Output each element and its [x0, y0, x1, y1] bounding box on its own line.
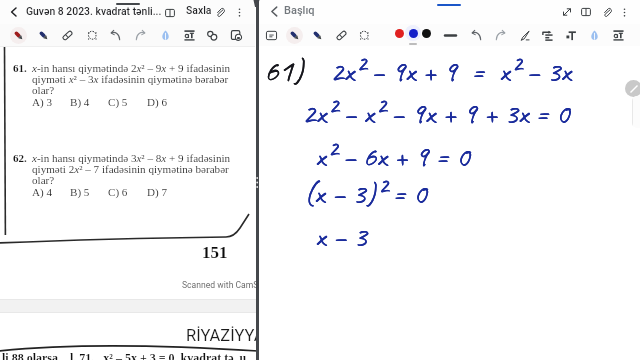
- button[interactable]: Sticker: [260, 24, 282, 46]
- button[interactable]: Text box: [607, 24, 629, 46]
- button[interactable]: Split view: [578, 4, 594, 20]
- staticText: 61): [264, 50, 304, 90]
- staticText: x² – 6x + 9 = 0: [315, 137, 470, 175]
- staticText: li 88 olarsa, l. 71. x² – 5x + 3 = 0 kva…: [2, 351, 247, 360]
- staticText: D) 6: [147, 96, 168, 108]
- staticText: 2x² – 9x + 9 = x² – 3x: [330, 52, 571, 90]
- button[interactable]: Back: [6, 4, 22, 20]
- staticText: 2x² – 9x + 9 = x² – 3x: [330, 52, 571, 90]
- staticText: olar?: [32, 84, 55, 96]
- button[interactable]: Attach: [212, 4, 228, 20]
- button[interactable]: Shapes: [201, 24, 223, 46]
- button[interactable]: Resize split: [256, 0, 259, 360]
- button[interactable]: Ink colour: [404, 24, 422, 42]
- staticText: olar?: [32, 174, 55, 186]
- button[interactable]: Highlighter: [154, 24, 176, 46]
- staticText: C) 5: [108, 96, 128, 108]
- button[interactable]: More options: [616, 4, 632, 20]
- staticText: x² – 6x + 9 = 0: [315, 137, 470, 175]
- staticText: A) 3: [32, 96, 53, 108]
- button[interactable]: Lasso select: [353, 24, 375, 46]
- button[interactable]: More options: [231, 4, 247, 20]
- staticText: (x – 3)² = 0: [304, 174, 427, 212]
- staticText: x-in hansı qiymətində 2x² – 9x + 9 ifadə…: [32, 62, 231, 74]
- button[interactable]: Pen settings: [513, 24, 535, 46]
- staticText: qiyməti x² – 3x ifadəsinin qiymətinə bər…: [32, 73, 229, 85]
- staticText: A) 4: [32, 186, 53, 198]
- staticText: 151: [202, 243, 228, 262]
- staticText: 61): [264, 50, 304, 90]
- button[interactable]: Blue pen: [32, 24, 54, 46]
- button[interactable]: Marker: [306, 24, 328, 46]
- staticText: Guvən 8 2023. kvadrat tənli...: [26, 5, 162, 17]
- button[interactable]: View mode: [161, 4, 178, 21]
- staticText: qiyməti 2x² – 7 ifadəsinin qiymətinə bər…: [32, 163, 229, 175]
- staticText: 61.: [13, 62, 27, 74]
- staticText: (x – 3)² = 0: [304, 174, 427, 212]
- staticText: x² – 6x + 9 = 0: [315, 137, 470, 175]
- staticText: Scanned with CamSc: [182, 280, 263, 290]
- staticText: x – 3: [315, 217, 367, 255]
- staticText: 2x² – 9x + 9 = x² – 3x: [330, 52, 571, 90]
- staticText: 2x² – x² – 9x + 9 + 3x = 0: [302, 94, 570, 132]
- button[interactable]: Ink colour: [417, 24, 435, 42]
- staticText: x-in hansı qiymətində 3x² – 8x + 9 ifadə…: [32, 152, 231, 164]
- staticText: 2x² – x² – 9x + 9 + 3x = 0: [302, 94, 570, 132]
- staticText: x – 3: [315, 217, 367, 255]
- button[interactable]: Text box: [178, 24, 200, 46]
- staticText: Başlıq: [284, 4, 315, 17]
- button[interactable]: Eraser: [56, 24, 78, 46]
- button[interactable]: Undo: [104, 24, 126, 46]
- button[interactable]: Saxla: [184, 2, 214, 18]
- button[interactable]: Expand: [559, 4, 575, 20]
- staticText: B) 4: [70, 96, 90, 108]
- staticText: B) 5: [70, 186, 90, 198]
- staticText: 2x² – x² – 9x + 9 + 3x = 0: [302, 94, 570, 132]
- staticText: 62.: [13, 152, 27, 164]
- button[interactable]: Stroke width: [439, 24, 461, 46]
- button[interactable]: Back: [266, 3, 283, 20]
- button[interactable]: Undo: [465, 24, 487, 46]
- staticText: D) 7: [147, 186, 168, 198]
- button[interactable]: Insert image: [225, 24, 247, 46]
- button[interactable]: Pen: [283, 24, 305, 46]
- button[interactable]: Align: [536, 24, 558, 46]
- button[interactable]: Text: [560, 24, 582, 46]
- button[interactable]: Redo: [129, 24, 151, 46]
- staticText: x – 3: [315, 217, 367, 255]
- staticText: (x – 3)² = 0: [304, 174, 427, 212]
- button[interactable]: Pen tool: [625, 80, 640, 97]
- staticText: C) 6: [108, 186, 128, 198]
- button[interactable]: Redo: [489, 24, 511, 46]
- button[interactable]: Attach: [599, 4, 615, 20]
- button[interactable]: Lasso select: [81, 24, 103, 46]
- staticText: RİYAZİYYAT: [186, 326, 274, 345]
- staticText: 61): [264, 50, 304, 90]
- button[interactable]: Ink colour: [390, 24, 408, 42]
- button[interactable]: Eraser: [330, 24, 352, 46]
- button[interactable]: Red pen: [7, 24, 29, 46]
- staticText: Saxla: [186, 4, 212, 16]
- button[interactable]: Highlighter: [583, 24, 605, 46]
